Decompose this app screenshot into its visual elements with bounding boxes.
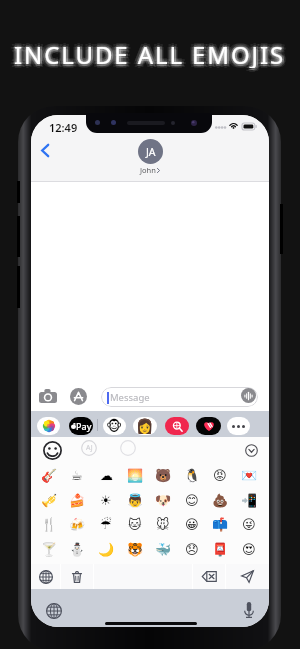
button[interactable]: 💌 bbox=[236, 464, 262, 486]
staticText: 🌅 bbox=[127, 468, 144, 483]
button[interactable]: 😀 bbox=[179, 513, 205, 535]
staticText: INCLUDE ALL EMOJIS bbox=[14, 34, 286, 64]
staticText: 🐻 bbox=[155, 468, 172, 483]
button[interactable]: JA bbox=[137, 139, 163, 175]
button[interactable]: 😍 bbox=[236, 538, 262, 560]
staticText: INCLUDE ALL EMOJIS bbox=[13, 40, 285, 70]
staticText: ☁️ bbox=[100, 468, 113, 483]
staticText: 📫 bbox=[212, 517, 229, 532]
staticText: JA bbox=[146, 145, 156, 159]
button[interactable]: 😜 bbox=[236, 513, 262, 535]
button[interactable]: ☁️ bbox=[93, 464, 119, 486]
button[interactable]: App Store bbox=[70, 388, 87, 405]
staticText: INCLUDE ALL EMOJIS bbox=[14, 36, 286, 66]
staticText: 📮 bbox=[212, 542, 229, 557]
button[interactable]: 😡 bbox=[207, 464, 233, 486]
staticText: 12:49 bbox=[49, 120, 78, 135]
button[interactable]: Back bbox=[35, 139, 55, 161]
staticText: 👼 bbox=[127, 493, 144, 508]
button[interactable]: Images bbox=[165, 417, 189, 435]
button[interactable]: Stickers bbox=[120, 440, 136, 456]
staticText: 👩 bbox=[136, 418, 154, 434]
button[interactable]: Camera bbox=[36, 386, 60, 406]
button[interactable]: Backspace bbox=[193, 564, 225, 589]
button[interactable]: Smileys bbox=[38, 438, 67, 462]
button[interactable]: Memoji monkey bbox=[103, 417, 126, 435]
button[interactable]: 🐶 bbox=[150, 489, 176, 511]
button[interactable]: Message bbox=[101, 387, 258, 407]
button[interactable]: 🐳 bbox=[150, 538, 176, 560]
staticText: INCLUDE ALL EMOJIS bbox=[10, 38, 282, 68]
staticText: 🍻 bbox=[69, 517, 86, 532]
staticText: 🍴 bbox=[41, 517, 58, 532]
button[interactable]: 🐧 bbox=[179, 464, 205, 486]
button[interactable]: 🍴 bbox=[36, 513, 62, 535]
staticText: INCLUDE ALL EMOJIS bbox=[14, 38, 286, 68]
staticText: INCLUDE ALL EMOJIS bbox=[16, 37, 288, 67]
button[interactable]: Digital Touch bbox=[196, 417, 221, 435]
staticText: 😞 bbox=[185, 542, 199, 557]
button[interactable]: 🍻 bbox=[64, 513, 90, 535]
staticText: John bbox=[140, 165, 156, 175]
staticText: INCLUDE ALL EMOJIS bbox=[18, 38, 290, 68]
staticText: Pay bbox=[76, 420, 92, 432]
button[interactable]: Memoji person bbox=[133, 417, 157, 435]
staticText: INCLUDE ALL EMOJIS bbox=[12, 38, 284, 68]
button[interactable]: 🍰 bbox=[64, 489, 90, 511]
staticText: 🍸 bbox=[41, 542, 58, 557]
button[interactable]: ☔ bbox=[93, 513, 119, 535]
staticText: INCLUDE ALL EMOJIS bbox=[16, 40, 288, 70]
button[interactable]: ☕ bbox=[64, 464, 90, 486]
button[interactable]: Record audio bbox=[241, 388, 256, 403]
staticText: 😀 bbox=[185, 517, 199, 532]
button[interactable]: 🐯 bbox=[122, 538, 148, 560]
button[interactable]: Next keyboard bbox=[31, 564, 60, 589]
staticText: 📲 bbox=[241, 493, 258, 508]
button[interactable]: 🎸 bbox=[36, 464, 62, 486]
button[interactable]: Keyboard language bbox=[45, 602, 62, 619]
button[interactable]: 🐻 bbox=[150, 464, 176, 486]
button[interactable]: 👼 bbox=[122, 489, 148, 511]
staticText: 🐭 bbox=[156, 517, 170, 532]
button[interactable]: 🐱 bbox=[122, 513, 148, 535]
staticText: INCLUDE ALL EMOJIS bbox=[17, 35, 289, 65]
button[interactable]: Apple Pay bbox=[69, 417, 93, 435]
button[interactable]: ☀️ bbox=[93, 489, 119, 511]
staticText: AJ bbox=[86, 443, 93, 453]
staticText: 🎸 bbox=[41, 468, 58, 483]
staticText: INCLUDE ALL EMOJIS bbox=[13, 37, 285, 67]
button[interactable]: Delete bbox=[61, 564, 93, 589]
button[interactable]: 😊 bbox=[179, 489, 205, 511]
button[interactable]: 🌙 bbox=[93, 538, 119, 560]
button[interactable]: 🍸 bbox=[36, 538, 62, 560]
button[interactable]: 📫 bbox=[207, 513, 233, 535]
button[interactable]: 🎺 bbox=[36, 489, 62, 511]
staticText: 😍 bbox=[242, 542, 256, 557]
staticText: INCLUDE ALL EMOJIS bbox=[11, 41, 283, 71]
staticText: 💌 bbox=[241, 468, 258, 483]
button[interactable]: Photos bbox=[37, 417, 60, 435]
button[interactable]: Memoji stickers bbox=[81, 440, 97, 456]
button[interactable]: ⛄ bbox=[64, 538, 90, 560]
staticText: Message bbox=[110, 391, 150, 404]
staticText: ☔ bbox=[100, 517, 112, 532]
staticText: ⛄ bbox=[69, 542, 86, 557]
staticText: INCLUDE ALL EMOJIS bbox=[14, 40, 286, 70]
button[interactable]: 🌅 bbox=[122, 464, 148, 486]
button[interactable]: 🐭 bbox=[150, 513, 176, 535]
button[interactable]: 😞 bbox=[179, 538, 205, 560]
button[interactable]: 📲 bbox=[236, 489, 262, 511]
button[interactable]: More apps bbox=[227, 417, 250, 435]
staticText: 🐯 bbox=[127, 542, 144, 557]
button[interactable]: 📮 bbox=[207, 538, 233, 560]
button[interactable]: 💩 bbox=[207, 489, 233, 511]
button[interactable]: Collapse keyboard bbox=[244, 443, 259, 458]
button[interactable]: Send bbox=[226, 564, 269, 589]
staticText: 😜 bbox=[242, 517, 256, 532]
staticText: ☀️ bbox=[100, 493, 112, 508]
staticText: 🍰 bbox=[69, 493, 86, 508]
staticText: INCLUDE ALL EMOJIS bbox=[17, 41, 289, 71]
button[interactable]: Dictation bbox=[240, 600, 257, 620]
staticText: 😊 bbox=[185, 493, 199, 508]
